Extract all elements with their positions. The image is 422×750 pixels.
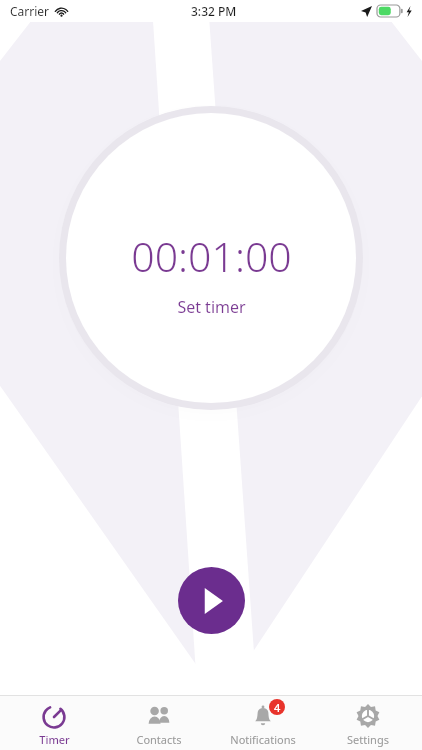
staticText: Notifications: [230, 732, 296, 747]
staticText: Carrier: [10, 3, 50, 19]
button[interactable]: 4: [213, 699, 313, 747]
staticText: 3:32 PM: [191, 3, 237, 19]
staticText: Set timer: [177, 296, 246, 318]
staticText: Settings: [347, 732, 389, 747]
button[interactable]: Settings: [318, 699, 418, 747]
staticText: 00:01:00: [131, 228, 292, 284]
staticText: Contacts: [136, 732, 182, 747]
staticText: 4: [274, 700, 281, 715]
button[interactable]: Start timer: [178, 567, 245, 634]
staticText: Timer: [39, 732, 70, 747]
button[interactable]: Timer: [4, 699, 104, 747]
button[interactable]: Contacts: [109, 699, 209, 747]
button[interactable]: 00:01:00: [131, 228, 292, 318]
